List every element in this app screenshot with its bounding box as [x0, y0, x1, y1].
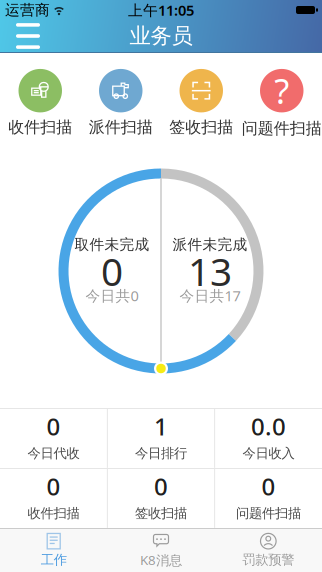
button[interactable]: 工作: [0, 529, 107, 572]
button[interactable]: 罚款预警: [215, 529, 322, 572]
staticText: 罚款预警: [242, 552, 294, 568]
button[interactable]: 签收扫描: [161, 52, 241, 137]
button[interactable]: 派件扫描: [80, 52, 161, 137]
staticText: 上午11:05: [128, 0, 194, 20]
staticText: 工作: [41, 552, 67, 568]
staticText: 业务员: [129, 23, 192, 49]
staticText: 今日代收: [28, 445, 80, 461]
staticText: 0: [47, 410, 61, 442]
staticText: 取件未完成: [74, 235, 149, 253]
staticText: 1: [154, 410, 168, 442]
button[interactable]: ?: [241, 51, 322, 138]
staticText: 派件扫描: [89, 117, 153, 137]
staticText: 13: [188, 245, 232, 297]
staticText: 0: [47, 470, 61, 502]
button[interactable]: 收件扫描: [0, 52, 80, 137]
staticText: 收件扫描: [8, 117, 72, 137]
staticText: 问题件扫描: [236, 505, 301, 521]
staticText: 0: [101, 245, 123, 297]
staticText: ?: [274, 68, 289, 114]
staticText: K8消息: [140, 551, 182, 569]
staticText: 今日收入: [242, 445, 294, 461]
staticText: 签收扫描: [169, 117, 233, 137]
staticText: 0: [154, 470, 168, 502]
button[interactable]: K8消息: [107, 529, 215, 572]
staticText: 收件扫描: [28, 505, 80, 521]
staticText: 运营商: [5, 1, 50, 19]
button[interactable]: 菜单: [0, 19, 40, 53]
staticText: 今日共0: [85, 286, 138, 305]
staticText: 派件未完成: [172, 235, 247, 253]
staticText: 0: [261, 470, 275, 502]
staticText: 今日排行: [135, 445, 187, 461]
staticText: 签收扫描: [135, 505, 187, 521]
staticText: 今日共17: [179, 286, 240, 305]
staticText: 0.0: [251, 410, 286, 442]
staticText: 问题件扫描: [242, 119, 322, 138]
